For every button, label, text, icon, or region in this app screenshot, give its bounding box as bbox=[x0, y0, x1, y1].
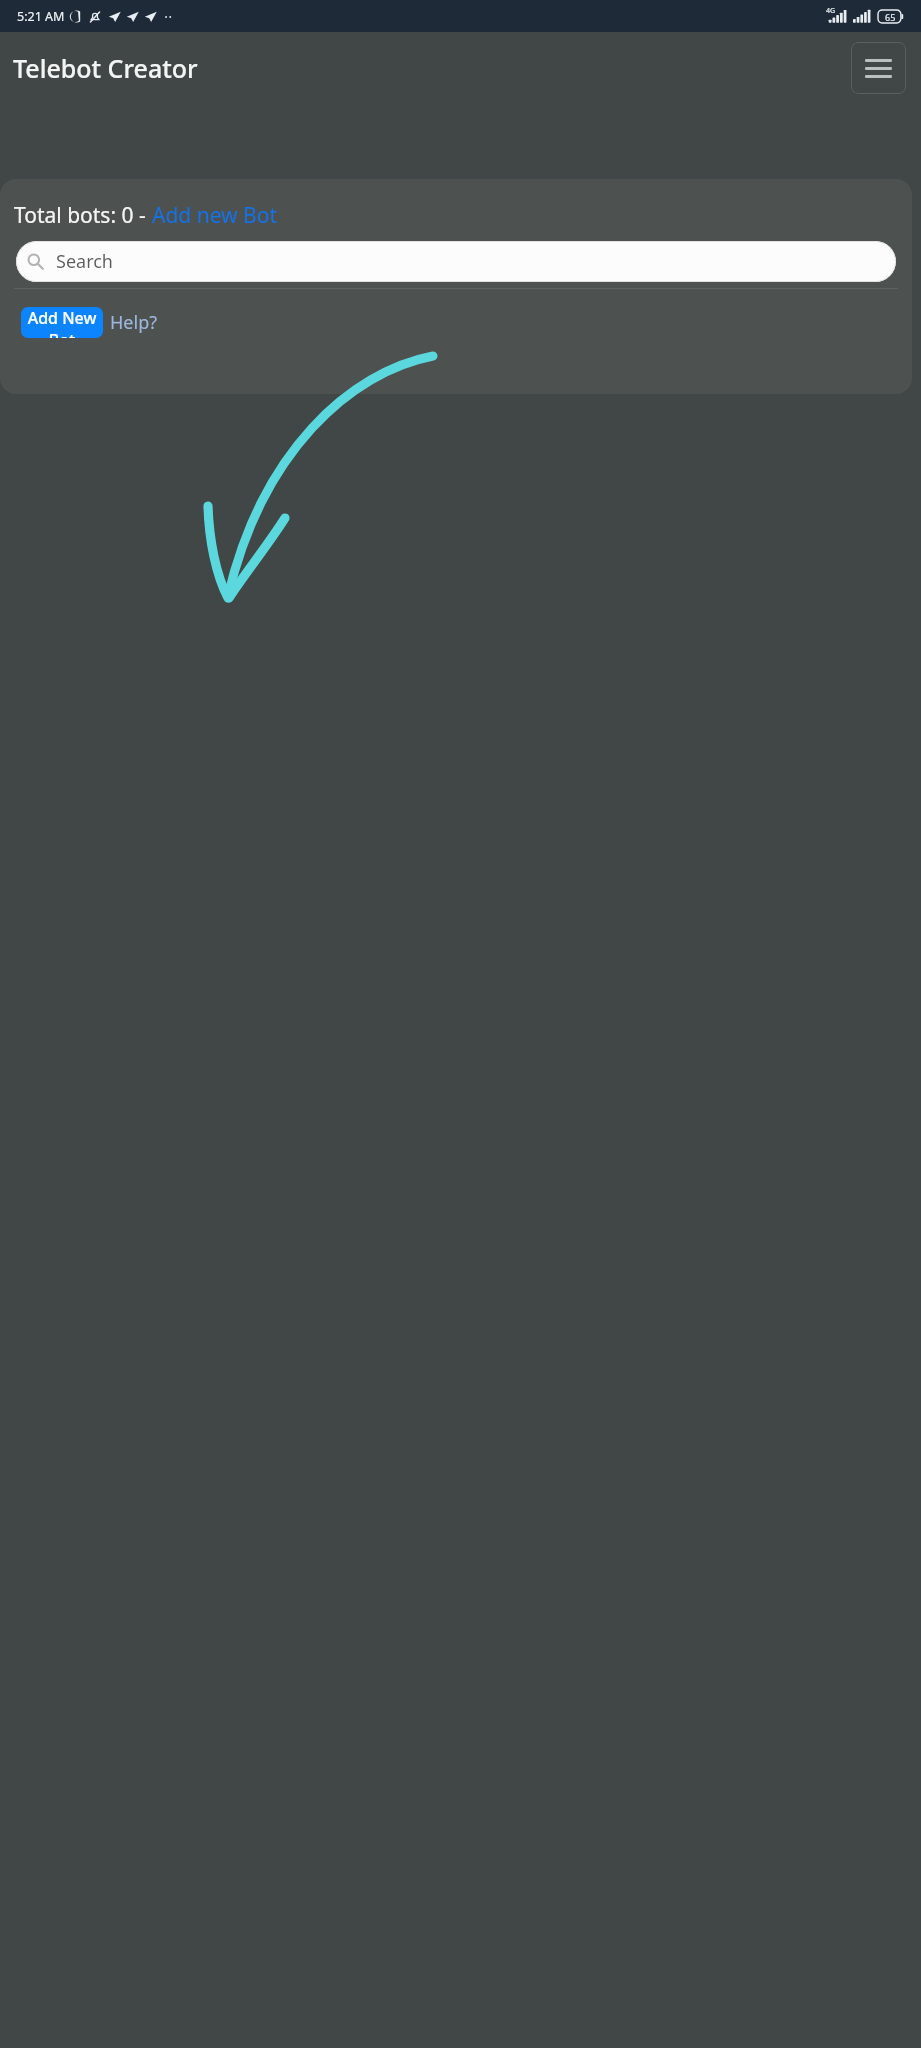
button[interactable]: Help? bbox=[107, 306, 161, 339]
staticText: Add new Bot bbox=[152, 201, 278, 230]
staticText: 65 bbox=[885, 11, 896, 23]
staticText: Search bbox=[56, 249, 113, 274]
staticText: 5:21 AM bbox=[17, 8, 65, 25]
button[interactable]: Add new Bot bbox=[152, 201, 278, 230]
button[interactable]: Search bbox=[16, 241, 896, 282]
staticText: Telebot Creator bbox=[13, 51, 198, 85]
button[interactable]: Menu bbox=[851, 42, 906, 94]
staticText: 4G bbox=[826, 6, 836, 16]
staticText: Add New Bot bbox=[21, 307, 103, 338]
staticText: Help? bbox=[110, 310, 158, 335]
button[interactable]: Add New Bot bbox=[21, 307, 103, 338]
staticText: Total bots: 0 - bbox=[14, 201, 152, 230]
